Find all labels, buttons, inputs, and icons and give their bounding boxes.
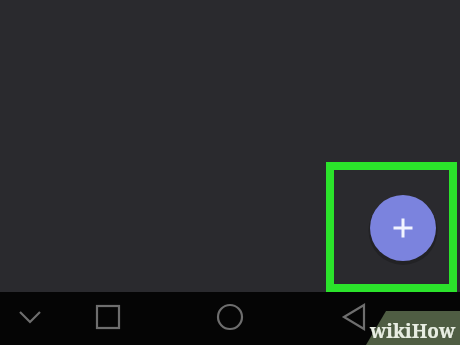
button[interactable]: Recent apps	[86, 296, 130, 340]
button[interactable]: Hide keyboard	[6, 296, 54, 340]
button[interactable]: Back	[333, 296, 377, 340]
button[interactable]: Add	[326, 162, 460, 292]
button[interactable]: Home	[208, 296, 252, 340]
staticText: wikiHow	[370, 318, 456, 344]
